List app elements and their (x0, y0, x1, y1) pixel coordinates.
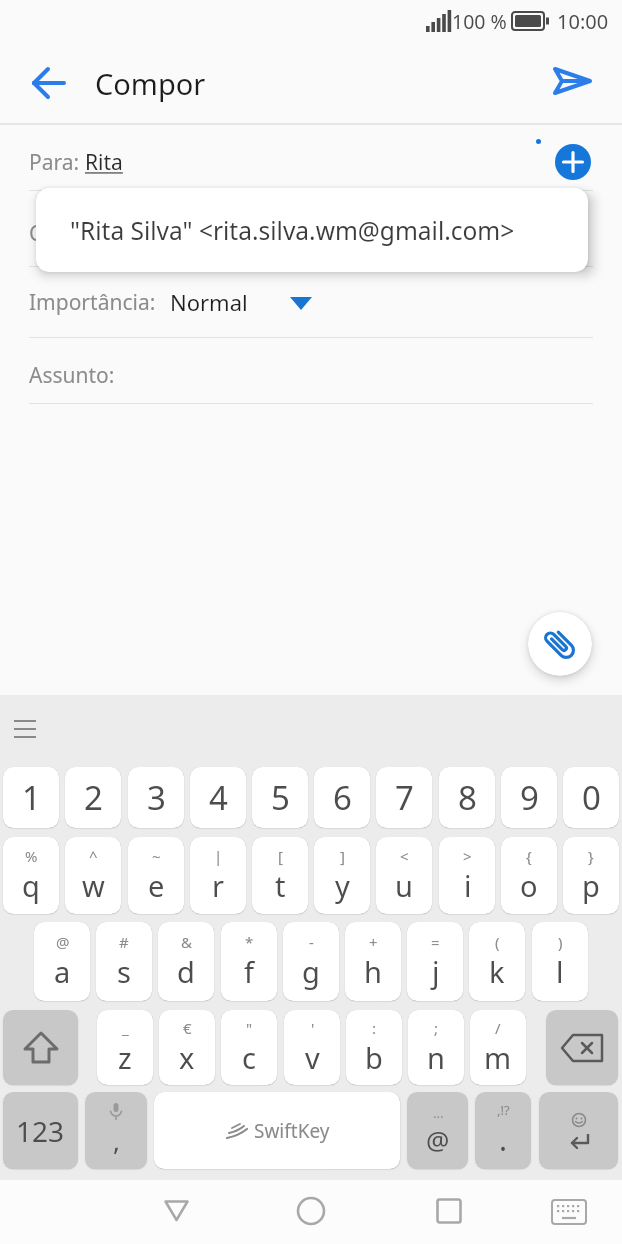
button[interactable]: < (376, 837, 432, 914)
button[interactable]: Assunto: (29, 360, 229, 390)
staticText: 1 (22, 775, 41, 820)
button[interactable] (288, 295, 314, 313)
staticText: ' (311, 1018, 315, 1038)
button[interactable]: - (283, 922, 339, 1001)
staticText: > (463, 846, 472, 866)
button[interactable]: + (345, 922, 401, 1001)
staticText: v (305, 1038, 320, 1077)
button[interactable] (548, 60, 598, 104)
staticText: c (242, 1038, 256, 1077)
button[interactable]: _ (97, 1010, 153, 1085)
button[interactable]: [ (252, 837, 308, 914)
staticText: e (148, 866, 165, 905)
button[interactable]: 0 (563, 767, 619, 828)
staticText: n (427, 1038, 445, 1077)
staticText: Rita (85, 148, 123, 177)
staticText: [ (278, 846, 283, 866)
staticText: z (118, 1038, 132, 1077)
staticText: " (246, 1018, 253, 1038)
button[interactable]: ^ (65, 837, 121, 914)
button[interactable]: / (470, 1010, 526, 1085)
button[interactable]: "Rita Silva" <rita.silva.wm@gmail.com> (36, 188, 588, 272)
staticText: } (588, 846, 594, 866)
button[interactable]: ... (407, 1092, 468, 1169)
button[interactable]: ; (408, 1010, 464, 1085)
button[interactable]: 7 (376, 767, 432, 828)
staticText: < (400, 846, 409, 866)
button[interactable]: { (501, 837, 557, 914)
staticText: * (245, 932, 254, 952)
staticText: f (244, 952, 254, 991)
button[interactable]: 8 (439, 767, 495, 828)
staticText: 4 (209, 775, 228, 820)
staticText: j (432, 952, 440, 991)
staticText: | (214, 846, 223, 866)
staticText: Normal (170, 287, 248, 317)
staticText: m (484, 1038, 512, 1077)
staticText: t (275, 866, 286, 905)
button[interactable] (436, 1198, 462, 1224)
button[interactable]: Para: (29, 147, 529, 177)
button[interactable]: ] (314, 837, 370, 914)
staticText: ... (433, 1104, 444, 1122)
button[interactable]: 5 (252, 767, 308, 828)
button[interactable]: @ (34, 922, 90, 1001)
button[interactable]: * (221, 922, 277, 1001)
staticText: y (335, 866, 350, 905)
staticText: , (113, 1123, 120, 1158)
button[interactable] (551, 1199, 587, 1225)
staticText: p (582, 866, 600, 905)
staticText: h (364, 952, 382, 991)
staticText: ( (495, 932, 500, 952)
staticText: x (179, 1038, 195, 1077)
staticText: 8 (458, 775, 477, 820)
button[interactable]: , (85, 1092, 147, 1169)
button[interactable]: | (190, 837, 246, 914)
staticText: w (82, 866, 105, 905)
button[interactable]: 4 (190, 767, 246, 828)
button[interactable] (163, 1199, 190, 1223)
button[interactable]: ~ (128, 837, 184, 914)
button[interactable] (3, 1010, 78, 1085)
button[interactable]: # (96, 922, 152, 1001)
button[interactable]: € (159, 1010, 215, 1085)
button[interactable]: : (346, 1010, 402, 1085)
button[interactable]: % (3, 837, 59, 914)
staticText: ~ (152, 846, 161, 866)
button[interactable]: > (439, 837, 495, 914)
button[interactable]: 1 (3, 767, 59, 828)
button[interactable] (14, 718, 40, 742)
staticText: @ (426, 1122, 450, 1157)
button[interactable]: & (158, 922, 214, 1001)
button[interactable]: ( (469, 922, 525, 1001)
staticText: : (372, 1018, 377, 1038)
staticText: o (520, 866, 538, 905)
button[interactable] (539, 1092, 618, 1169)
staticText: b (365, 1038, 383, 1077)
staticText: C (29, 219, 43, 248)
button[interactable]: ' (284, 1010, 340, 1085)
button[interactable]: 9 (501, 767, 557, 828)
button[interactable]: ) (532, 922, 588, 1001)
button[interactable]: 123 (3, 1092, 78, 1169)
button[interactable]: 2 (65, 767, 121, 828)
button[interactable] (555, 144, 591, 180)
staticText: % (25, 846, 38, 866)
button[interactable] (28, 64, 68, 102)
staticText: & (181, 932, 192, 952)
button[interactable]: = (407, 922, 463, 1001)
button[interactable]: 6 (314, 767, 370, 828)
button[interactable] (546, 1010, 618, 1085)
button[interactable] (528, 612, 592, 676)
staticText: - (309, 932, 314, 952)
staticText: 123 (16, 1112, 65, 1150)
button[interactable] (296, 1196, 326, 1226)
button[interactable]: SwiftKey (154, 1092, 400, 1169)
staticText: SwiftKey (254, 1118, 330, 1144)
staticText: q (22, 866, 40, 905)
button[interactable]: " (221, 1010, 277, 1085)
button[interactable]: ,!? (475, 1092, 531, 1169)
button[interactable]: 3 (128, 767, 184, 828)
staticText: { (526, 846, 532, 866)
button[interactable]: } (563, 837, 619, 914)
